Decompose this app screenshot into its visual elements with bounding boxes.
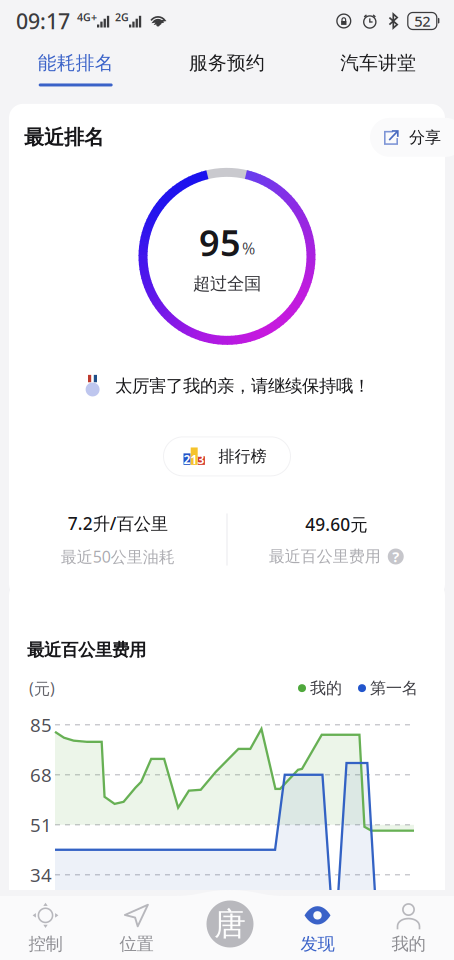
staticText: 49.60元 xyxy=(305,513,367,536)
staticText: 1 xyxy=(190,451,197,467)
staticText: 最近百公里费用 xyxy=(27,639,146,660)
staticText: 控制 xyxy=(28,933,62,955)
staticText: % xyxy=(242,238,255,259)
staticText: 34 xyxy=(30,862,52,887)
staticText: (元) xyxy=(29,677,55,699)
staticText: 4G+ xyxy=(77,10,97,24)
staticText: 95 xyxy=(199,218,241,266)
staticText: 第一名 xyxy=(370,678,418,698)
button[interactable]: 控制 xyxy=(0,893,91,960)
button[interactable]: 发现 xyxy=(272,893,363,960)
staticText: 发现 xyxy=(300,933,334,955)
staticText: ? xyxy=(392,547,399,566)
button[interactable]: 服务预约 xyxy=(151,42,303,93)
staticText: 2G xyxy=(115,10,129,24)
staticText: 唐 xyxy=(214,904,246,944)
button[interactable]: 汽车讲堂 xyxy=(303,42,454,93)
staticText: 3 xyxy=(198,451,205,467)
staticText: 68 xyxy=(30,762,52,787)
staticText: 我的 xyxy=(310,678,342,698)
staticText: 排行榜 xyxy=(218,446,266,466)
staticText: 位置 xyxy=(119,933,153,955)
staticText: 最近排名 xyxy=(24,125,104,150)
staticText: 09:17 xyxy=(16,7,70,35)
staticText: 最近50公里油耗 xyxy=(61,546,175,567)
staticText: 分享 xyxy=(409,127,441,147)
staticText: 2 xyxy=(183,451,190,467)
staticText: 汽车讲堂 xyxy=(340,51,416,74)
staticText: 太厉害了我的亲，请继续保持哦！ xyxy=(115,375,370,396)
staticText: 7.2升/百公里 xyxy=(68,512,168,535)
button[interactable]: 能耗排名 xyxy=(0,42,151,93)
button[interactable]: 位置 xyxy=(91,893,182,960)
button[interactable]: Vehicle xyxy=(206,900,253,947)
staticText: 52 xyxy=(414,11,430,31)
staticText: 最近百公里费用 xyxy=(269,547,381,566)
staticText: 我的 xyxy=(391,933,425,955)
button[interactable]: 分享 xyxy=(370,118,454,157)
button[interactable]: 2 xyxy=(163,437,290,476)
staticText: 能耗排名 xyxy=(38,51,114,74)
staticText: 服务预约 xyxy=(189,51,265,74)
staticText: 超过全国 xyxy=(193,273,261,294)
staticText: 85 xyxy=(30,712,52,737)
staticText: 51 xyxy=(30,812,52,837)
button[interactable]: 我的 xyxy=(363,893,454,960)
